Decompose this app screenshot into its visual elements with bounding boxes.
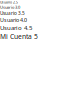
- staticText: Mi Cuenta 5: [0, 32, 38, 41]
- staticText: Usuario 3.5: [0, 10, 25, 16]
- staticText: Usuario 4.0: [0, 16, 27, 24]
- staticText: Usuario 4.5: [0, 24, 32, 32]
- staticText: Usuario 2.5: [0, 0, 18, 4]
- staticText: Usuario 3.0: [0, 4, 20, 10]
